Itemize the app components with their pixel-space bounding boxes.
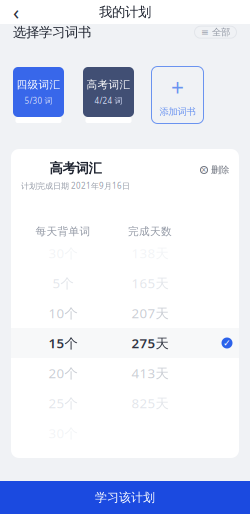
staticText: 计划完成日期 2021年9月16日 [21,180,130,191]
button[interactable]: × [200,164,229,176]
staticText: 高考词汇 [49,160,101,176]
staticText: 每天背单词 [35,225,90,238]
staticText: 四级词汇 [16,78,60,91]
staticText: 25个 [48,394,77,412]
staticText: 学习该计划 [95,490,155,505]
staticText: + [171,73,184,103]
staticText: 825天 [131,394,168,412]
staticText: 30个 [48,244,77,262]
staticText: 4/24 词 [94,95,122,106]
staticText: 完成天数 [128,225,172,238]
staticText: × [201,165,206,175]
staticText: 5个 [52,274,73,292]
staticText: 全部 [212,26,230,38]
button[interactable]: + [151,66,204,124]
button[interactable]: ≡ [194,26,237,39]
button[interactable]: 10个 [11,298,239,328]
button[interactable]: 四级词汇 [13,67,64,123]
button[interactable]: 15个 [11,328,239,358]
button[interactable]: 5个 [11,268,239,298]
staticText: 413天 [131,364,168,382]
staticText: 选择学习词书 [13,24,91,40]
staticText: 添加词书 [159,106,195,117]
button[interactable]: 学习该计划 [0,481,250,514]
staticText: 5/30 词 [24,95,52,106]
button[interactable]: 20个 [11,358,239,388]
staticText: 高考词汇 [86,78,130,91]
button[interactable]: Back [4,1,28,23]
staticText: ✓ [223,338,231,348]
staticText: 207天 [131,304,168,322]
staticText: 30个 [48,424,77,442]
staticText: ≡ [201,27,209,37]
staticText: ‹ [13,0,19,25]
staticText: 275天 [131,334,168,352]
button[interactable]: 25个 [11,388,239,418]
button[interactable]: 高考词汇 [83,67,134,123]
staticText: 删除 [211,164,229,176]
staticText: 165天 [131,274,168,292]
staticText: 20个 [48,364,77,382]
staticText: 我的计划 [99,4,151,20]
staticText: 138天 [131,244,168,262]
staticText: 15个 [48,334,77,352]
staticText: 10个 [48,304,77,322]
